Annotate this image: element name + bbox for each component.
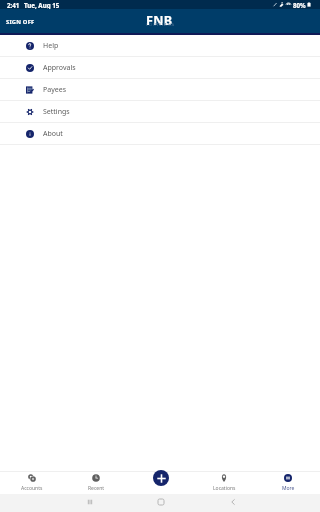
button[interactable]: Locations (192, 471, 256, 494)
button[interactable]: Payees (0, 79, 320, 101)
staticText: Help (43, 41, 59, 51)
staticText: Settings (43, 107, 70, 117)
button[interactable]: Help (0, 35, 320, 57)
staticText: 80% (293, 1, 306, 9)
button[interactable]: Accounts (0, 471, 64, 494)
staticText: Locations (213, 485, 236, 492)
staticText: Accounts (21, 485, 43, 492)
staticText: About (43, 129, 63, 139)
button[interactable]: Add (153, 470, 169, 486)
staticText: LOUISIANA (146, 22, 175, 28)
button[interactable]: About (0, 123, 320, 145)
staticText: 2:41 (7, 1, 20, 9)
button[interactable]: More (256, 471, 320, 494)
staticText: Tue, Aug 15 (24, 1, 60, 9)
button[interactable]: Recent (64, 471, 128, 494)
staticText: FNB (146, 12, 173, 29)
button[interactable]: Back (227, 496, 239, 508)
staticText: Approvals (43, 63, 76, 73)
staticText: More (282, 485, 295, 492)
button[interactable]: Recents (84, 496, 96, 508)
staticText: SIGN OFF (6, 18, 35, 26)
staticText: Payees (43, 85, 66, 95)
staticText: Recent (88, 485, 105, 492)
button[interactable]: Settings (0, 101, 320, 123)
button[interactable]: Home (155, 496, 167, 508)
button[interactable]: SIGN OFF (3, 16, 38, 28)
button[interactable]: Approvals (0, 57, 320, 79)
